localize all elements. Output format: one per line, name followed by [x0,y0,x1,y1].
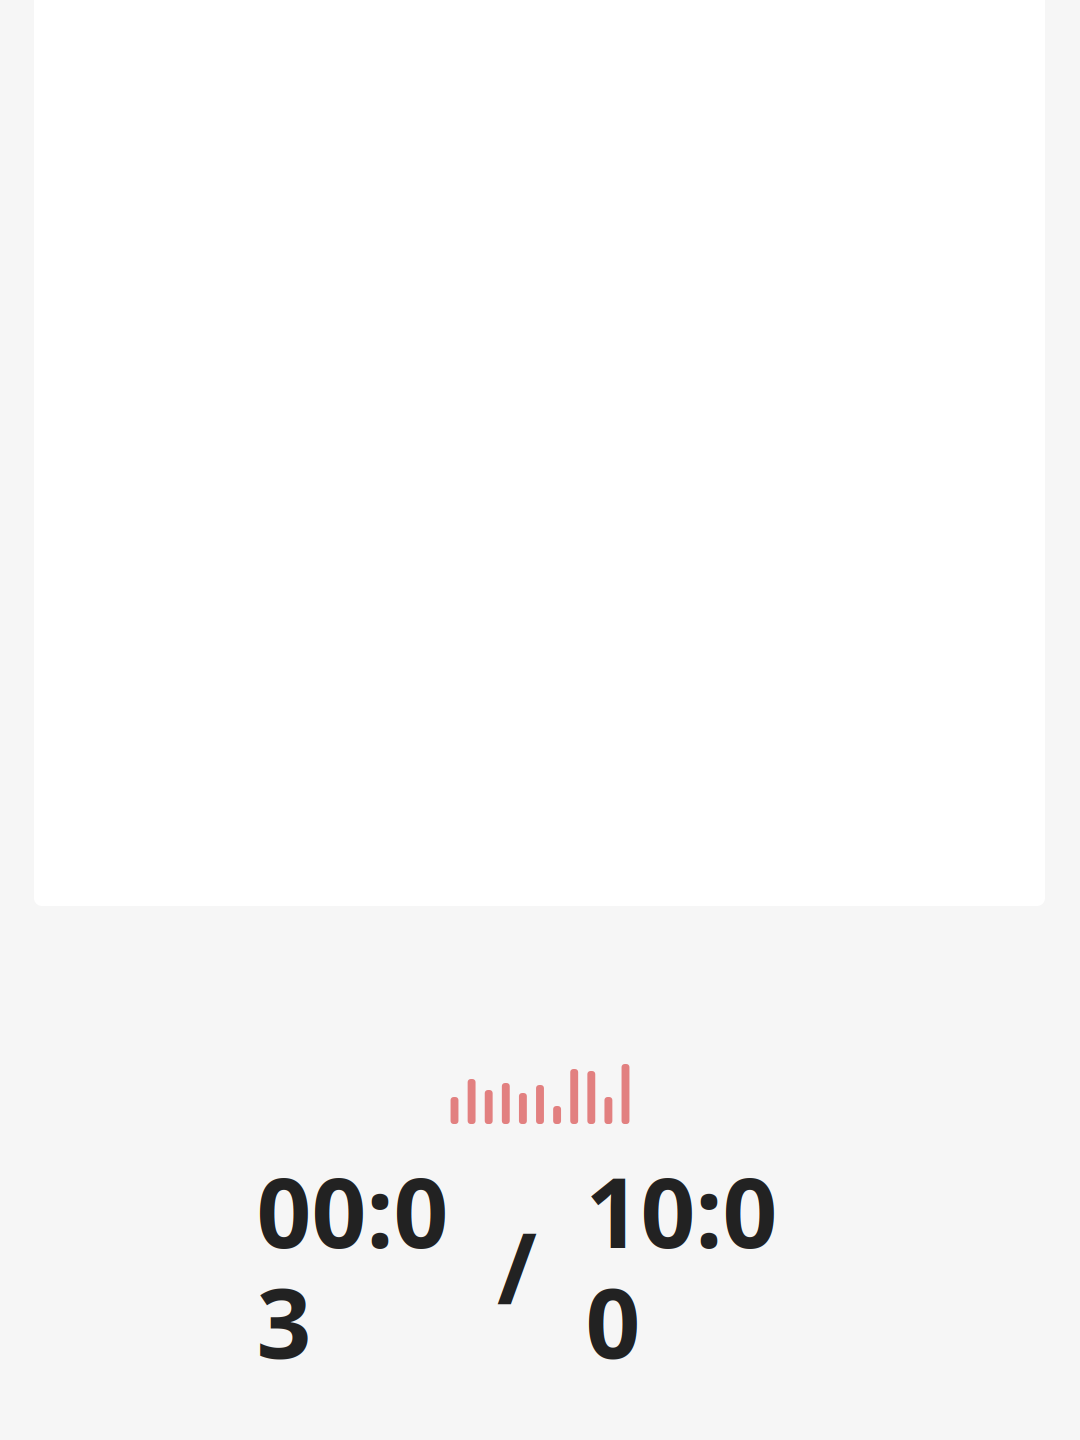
staticText: / [497,1202,537,1330]
button[interactable]: Play recording — 00:03 of 10:00 [0,1062,1080,1385]
staticText: 00:03 [256,1147,448,1385]
staticText: 10:00 [585,1147,777,1385]
